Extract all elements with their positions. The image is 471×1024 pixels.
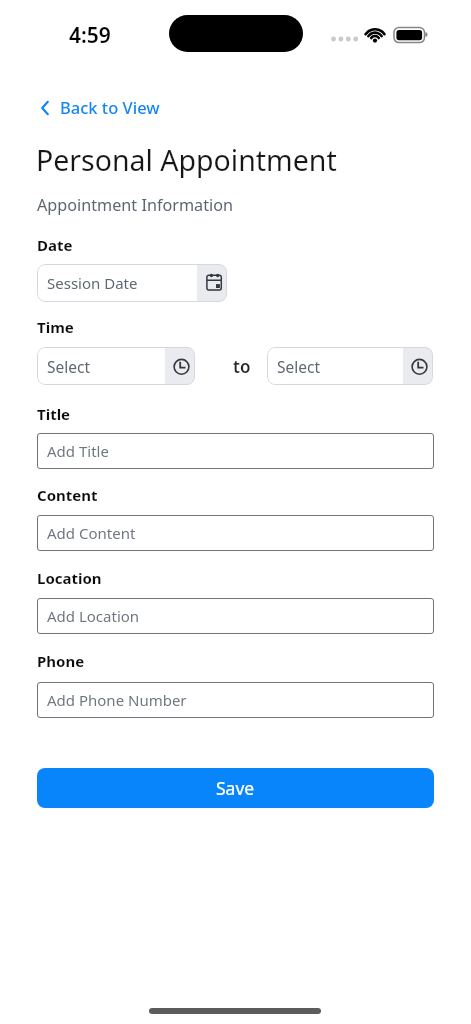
staticText: Save <box>216 776 255 800</box>
staticText: Content <box>37 485 98 505</box>
staticText: Title <box>37 404 71 424</box>
button[interactable]: Add Title <box>37 433 434 469</box>
staticText: Select <box>47 356 91 377</box>
staticText: Session Date <box>47 273 138 293</box>
staticText: Add Phone Number <box>47 690 187 710</box>
button[interactable]: Session Date <box>37 264 227 302</box>
button[interactable]: Save <box>37 768 434 808</box>
staticText: Add Title <box>47 441 109 461</box>
button[interactable]: Add Content <box>37 515 434 551</box>
staticText: to <box>233 355 251 378</box>
button[interactable]: Select <box>267 347 433 385</box>
staticText: Appointment Information <box>37 194 233 216</box>
staticText: Date <box>37 235 73 255</box>
staticText: Select <box>277 356 321 377</box>
staticText: Personal Appointment <box>36 141 337 180</box>
button[interactable]: Add Location <box>37 598 434 634</box>
staticText: Back to View <box>60 96 160 118</box>
staticText: Phone <box>37 651 85 671</box>
staticText: Location <box>37 568 102 588</box>
button[interactable]: Add Phone Number <box>37 682 434 718</box>
button[interactable]: Back to View <box>37 95 167 121</box>
staticText: Time <box>37 317 74 337</box>
button[interactable]: Select <box>37 347 195 385</box>
staticText: Add Content <box>47 523 136 543</box>
staticText: Add Location <box>47 606 140 626</box>
staticText: 4:59 <box>69 21 111 49</box>
